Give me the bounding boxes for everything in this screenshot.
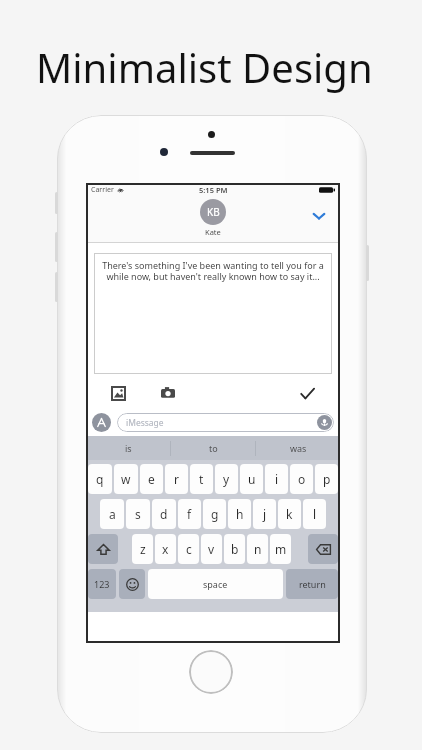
button[interactable]: j bbox=[253, 499, 276, 529]
staticText: x bbox=[162, 541, 169, 557]
staticText: j bbox=[263, 506, 267, 522]
button[interactable]: p bbox=[315, 464, 338, 494]
button[interactable]: Home bbox=[189, 650, 233, 694]
button[interactable]: s bbox=[126, 499, 150, 529]
button[interactable]: z bbox=[132, 534, 153, 564]
button[interactable]: a bbox=[100, 499, 124, 529]
button[interactable]: Collapse bbox=[308, 205, 330, 227]
button[interactable]: App Store bbox=[92, 413, 111, 432]
staticText: There's something I've been wanting to t… bbox=[99, 259, 327, 283]
staticText: is bbox=[125, 442, 132, 454]
staticText: e bbox=[148, 471, 155, 487]
staticText: space bbox=[203, 578, 228, 590]
staticText: 5:15 PM bbox=[199, 185, 228, 195]
staticText: k bbox=[286, 506, 293, 522]
button[interactable]: h bbox=[228, 499, 251, 529]
staticText: f bbox=[187, 506, 192, 522]
staticText: y bbox=[223, 471, 230, 487]
staticText: m bbox=[275, 541, 287, 557]
staticText: v bbox=[208, 541, 215, 557]
staticText: p bbox=[323, 471, 331, 487]
staticText: Carrier bbox=[91, 185, 114, 195]
button[interactable]: g bbox=[203, 499, 226, 529]
staticText: l bbox=[313, 506, 317, 522]
staticText: n bbox=[254, 541, 262, 557]
staticText: iMessage bbox=[126, 417, 164, 429]
staticText: g bbox=[211, 506, 219, 522]
button[interactable]: Dictate bbox=[317, 415, 332, 430]
staticText: r bbox=[174, 471, 179, 487]
button[interactable]: Photos bbox=[108, 383, 128, 403]
button[interactable]: m bbox=[270, 534, 291, 564]
button[interactable]: Shift bbox=[88, 534, 118, 564]
button[interactable]: y bbox=[215, 464, 238, 494]
button[interactable]: n bbox=[247, 534, 268, 564]
button[interactable]: t bbox=[190, 464, 213, 494]
button[interactable]: v bbox=[201, 534, 222, 564]
staticText: c bbox=[186, 541, 192, 557]
button[interactable]: b bbox=[224, 534, 245, 564]
button[interactable]: Backspace bbox=[308, 534, 338, 564]
button[interactable]: u bbox=[240, 464, 263, 494]
button[interactable]: 123 bbox=[88, 569, 116, 599]
staticText: KB bbox=[207, 205, 220, 219]
staticText: i bbox=[275, 471, 279, 487]
staticText: w bbox=[121, 471, 131, 487]
staticText: a bbox=[109, 506, 116, 522]
button[interactable]: e bbox=[140, 464, 163, 494]
button[interactable]: l bbox=[303, 499, 326, 529]
staticText: d bbox=[160, 506, 168, 522]
button[interactable]: q bbox=[88, 464, 112, 494]
button[interactable]: return bbox=[286, 569, 338, 599]
staticText: 123 bbox=[94, 578, 110, 590]
staticText: return bbox=[299, 578, 326, 590]
button[interactable]: is bbox=[86, 436, 170, 460]
button[interactable]: f bbox=[178, 499, 201, 529]
staticText: Kate bbox=[205, 227, 221, 237]
button[interactable]: space bbox=[148, 569, 283, 599]
button[interactable]: d bbox=[152, 499, 176, 529]
staticText: u bbox=[248, 471, 256, 487]
button[interactable]: o bbox=[290, 464, 313, 494]
button[interactable]: to bbox=[171, 436, 255, 460]
button[interactable]: was bbox=[256, 436, 340, 460]
staticText: z bbox=[140, 541, 146, 557]
staticText: t bbox=[199, 471, 204, 487]
staticText: was bbox=[290, 442, 307, 454]
button[interactable]: Emoji bbox=[119, 569, 145, 599]
button[interactable]: KB bbox=[200, 199, 226, 225]
staticText: q bbox=[96, 471, 104, 487]
staticText: s bbox=[135, 506, 141, 522]
button[interactable]: iMessage bbox=[117, 413, 334, 432]
button[interactable]: Camera bbox=[158, 383, 178, 403]
staticText: h bbox=[236, 506, 244, 522]
staticText: o bbox=[298, 471, 306, 487]
button[interactable]: Send bbox=[296, 382, 318, 404]
button[interactable]: x bbox=[155, 534, 176, 564]
staticText: b bbox=[231, 541, 239, 557]
button[interactable]: c bbox=[178, 534, 199, 564]
button[interactable]: k bbox=[278, 499, 301, 529]
staticText: Minimalist Design bbox=[36, 40, 373, 94]
button[interactable]: w bbox=[114, 464, 138, 494]
button[interactable]: r bbox=[165, 464, 188, 494]
button[interactable]: i bbox=[265, 464, 288, 494]
button[interactable]: There's something I've been wanting to t… bbox=[94, 253, 332, 374]
staticText: to bbox=[209, 442, 218, 454]
